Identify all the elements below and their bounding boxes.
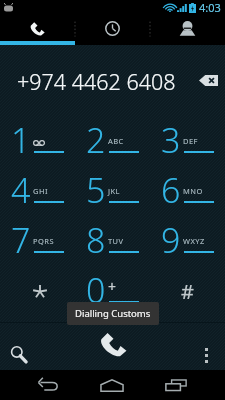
- staticText: 0: [86, 267, 106, 313]
- button[interactable]: [0, 266, 75, 316]
- staticText: ABC: [108, 136, 124, 146]
- staticText: TUV: [108, 236, 124, 246]
- button[interactable]: Dialer: [0, 15, 75, 41]
- button[interactable]: Backspace: [193, 65, 223, 95]
- staticText: 4:03: [199, 0, 221, 15]
- staticText: 8: [86, 217, 106, 263]
- button[interactable]: Recent apps: [144, 370, 208, 400]
- button[interactable]: Call: [93, 327, 133, 361]
- staticText: DEF: [183, 136, 198, 146]
- staticText: Dialling Customs: [75, 307, 151, 320]
- button[interactable]: 8: [75, 216, 150, 266]
- button[interactable]: Contacts: [150, 15, 225, 41]
- button[interactable]: 7: [0, 216, 75, 266]
- staticText: +: [108, 277, 117, 296]
- staticText: 6: [161, 167, 181, 213]
- staticText: 9: [161, 217, 181, 263]
- staticText: JKL: [108, 186, 120, 196]
- button[interactable]: 1: [0, 115, 75, 166]
- button[interactable]: 6: [150, 166, 225, 216]
- staticText: 1: [11, 117, 31, 163]
- button[interactable]: 3: [150, 115, 225, 166]
- button[interactable]: 4: [0, 166, 75, 216]
- button[interactable]: #: [150, 266, 225, 316]
- button[interactable]: 0: [75, 266, 150, 316]
- staticText: #: [181, 278, 194, 305]
- staticText: WXYZ: [183, 236, 205, 246]
- button[interactable]: Search: [3, 340, 37, 370]
- staticText: GHI: [33, 186, 48, 196]
- staticText: +974 4462 6408: [17, 67, 176, 96]
- staticText: MNO: [183, 186, 203, 196]
- staticText: 5: [86, 167, 106, 213]
- button[interactable]: 9: [150, 216, 225, 266]
- button[interactable]: Back: [17, 370, 80, 400]
- staticText: PQRS: [33, 236, 54, 246]
- button[interactable]: 2: [75, 115, 150, 166]
- button[interactable]: Home: [80, 370, 144, 400]
- button[interactable]: Call log: [75, 15, 150, 41]
- button[interactable]: More options: [190, 340, 222, 370]
- staticText: 3: [161, 117, 181, 163]
- staticText: 2: [86, 117, 106, 163]
- button[interactable]: 5: [75, 166, 150, 216]
- staticText: 4: [11, 167, 31, 213]
- staticText: 7: [11, 217, 31, 263]
